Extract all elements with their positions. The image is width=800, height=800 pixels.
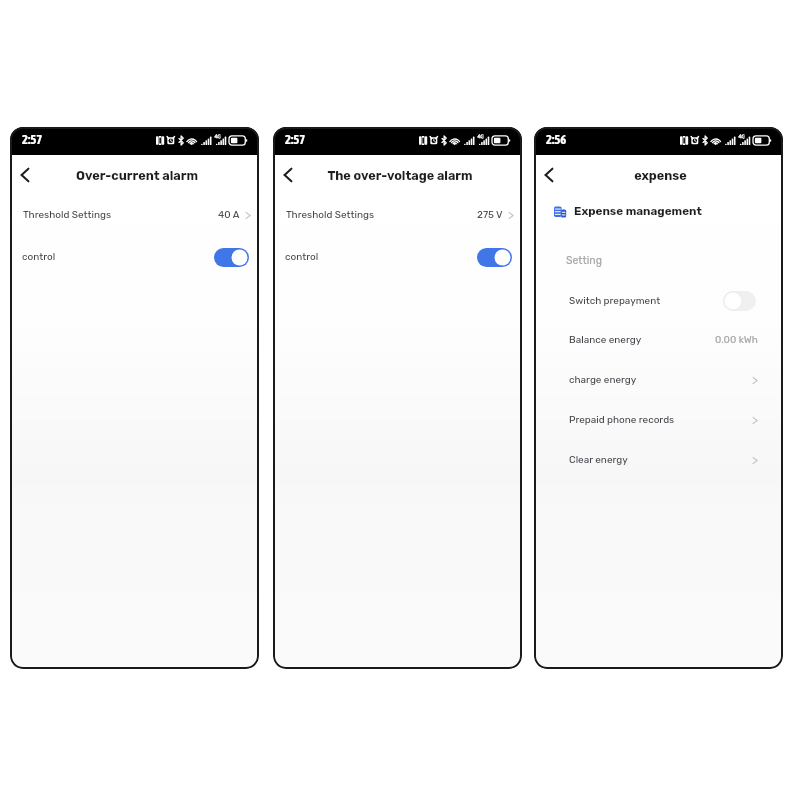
button[interactable]: Toggle on	[214, 248, 249, 267]
button[interactable]: Expense management	[534, 198, 783, 224]
button[interactable]: charge energy	[534, 365, 783, 395]
button[interactable]: Clear energy	[534, 445, 783, 475]
staticText: Clear energy	[569, 454, 628, 466]
staticText: Threshold Settings	[23, 209, 112, 221]
button[interactable]: Toggle off	[723, 291, 756, 311]
button[interactable]: Threshold Settings	[10, 200, 259, 230]
button[interactable]: Back	[276, 163, 300, 187]
button[interactable]: Toggle on	[477, 248, 512, 267]
button[interactable]: control	[10, 242, 259, 272]
staticText: expense	[634, 168, 687, 183]
staticText: Threshold Settings	[286, 209, 375, 221]
staticText: Switch prepayment	[569, 295, 661, 307]
staticText: Expense management	[574, 204, 702, 218]
button[interactable]: Back	[537, 163, 561, 187]
staticText: Setting	[566, 254, 602, 266]
staticText: Prepaid phone records	[569, 414, 675, 426]
staticText: Balance energy	[569, 334, 642, 346]
button[interactable]: Prepaid phone records	[534, 405, 783, 435]
button[interactable]: Threshold Settings	[273, 200, 522, 230]
button[interactable]: Balance energy	[534, 325, 783, 355]
staticText: Over-current alarm	[76, 168, 198, 183]
button[interactable]: Switch prepayment	[534, 286, 783, 316]
button[interactable]: Back	[13, 163, 37, 187]
staticText: charge energy	[569, 374, 637, 386]
staticText: 275 V	[477, 209, 503, 221]
staticText: 2:57	[285, 132, 306, 147]
staticText: control	[285, 251, 319, 263]
button[interactable]: control	[273, 242, 522, 272]
staticText: 2:56	[546, 132, 567, 147]
staticText: The over-voltage alarm	[327, 168, 473, 183]
staticText: 0.00 kWh	[715, 334, 758, 346]
staticText: 40 A	[218, 209, 240, 221]
staticText: 2:57	[22, 132, 43, 147]
staticText: control	[22, 251, 56, 263]
